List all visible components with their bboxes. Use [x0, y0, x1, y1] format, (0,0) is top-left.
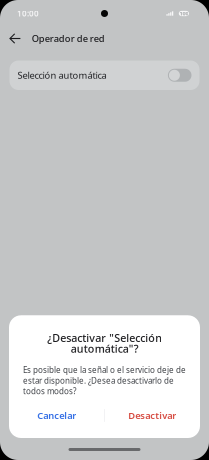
staticText: Operador de red: [32, 32, 105, 45]
button[interactable]: Cancelar: [9, 403, 104, 427]
staticText: Desactivar: [128, 409, 176, 422]
button[interactable]: Desactivar: [104, 403, 200, 427]
staticText: 100: [179, 10, 188, 17]
staticText: Selección automática: [17, 69, 106, 81]
staticText: Cancelar: [37, 409, 76, 422]
staticText: ¿Desactivar "Selección automática"?: [47, 331, 162, 356]
staticText: 10:00: [17, 8, 39, 19]
button[interactable]: Back: [0, 27, 32, 49]
button[interactable]: Selección automática: [9, 60, 199, 90]
staticText: Es posible que la señal o el servicio de…: [23, 365, 186, 396]
